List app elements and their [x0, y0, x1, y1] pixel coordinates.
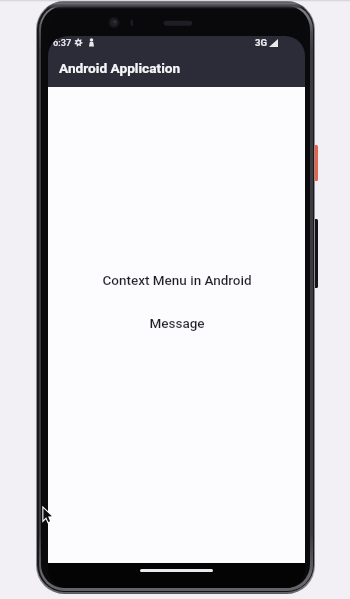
staticText: Android Application — [59, 60, 181, 76]
staticText: 6:37 — [53, 37, 72, 48]
button[interactable]: Android Application — [48, 52, 305, 87]
staticText: 3G — [255, 37, 268, 48]
button[interactable]: Home gesture bar — [140, 569, 213, 572]
staticText: Message — [149, 315, 205, 331]
other: Volume buttons — [314, 219, 318, 288]
staticText: Context Menu in Android — [102, 272, 252, 288]
other: Power button — [314, 145, 318, 181]
